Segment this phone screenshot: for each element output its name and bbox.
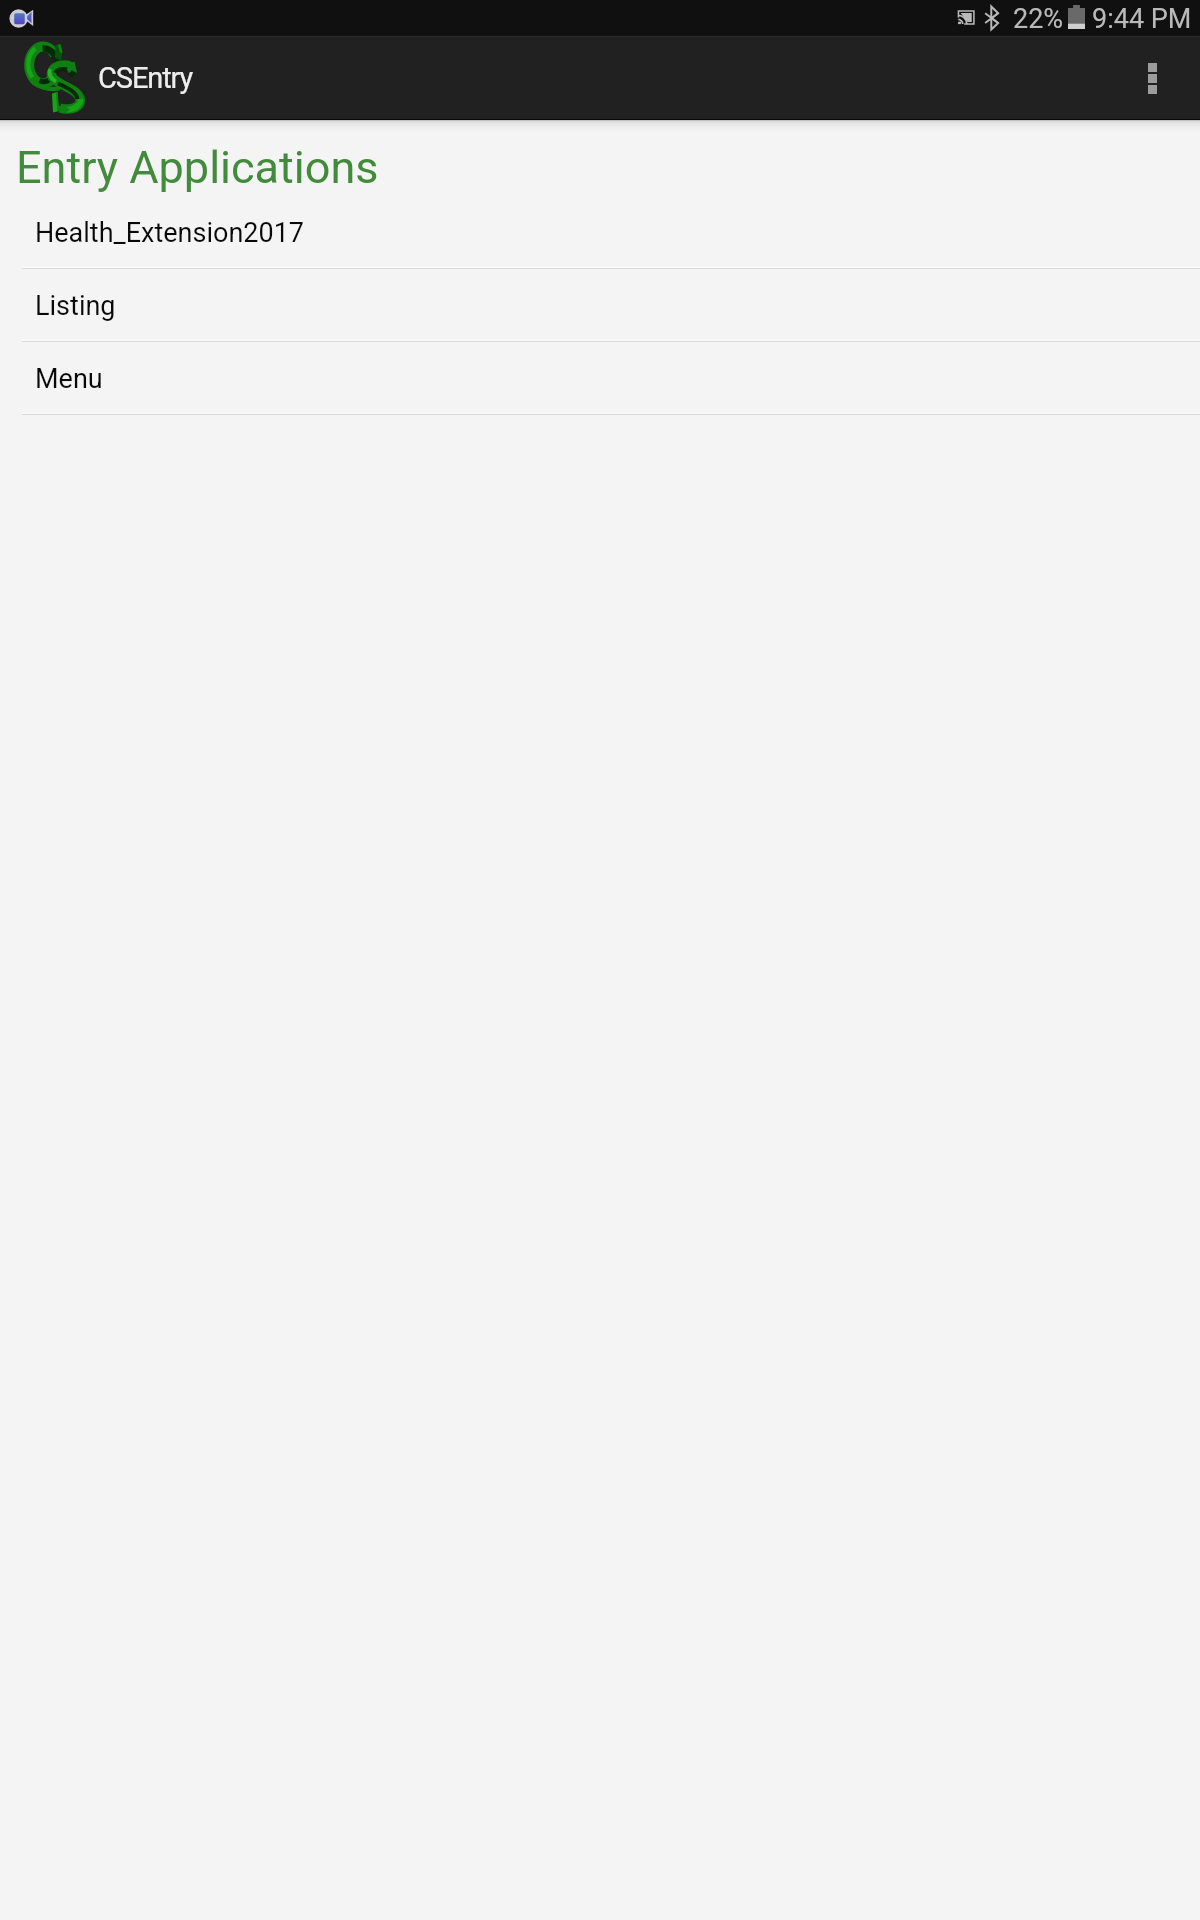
staticText: Health_Extension2017 <box>35 217 305 249</box>
button[interactable]: More options <box>1116 36 1200 120</box>
button[interactable]: Menu <box>0 342 1200 415</box>
staticText: Listing <box>35 290 116 322</box>
staticText: Entry Applications <box>16 141 379 194</box>
staticText: 22% <box>1013 3 1064 35</box>
staticText: 9:44 PM <box>1092 3 1192 35</box>
staticText: CSEntry <box>98 61 193 95</box>
staticText: Menu <box>35 363 103 395</box>
button[interactable]: Health_Extension2017 <box>0 196 1200 269</box>
button[interactable]: Listing <box>0 269 1200 342</box>
